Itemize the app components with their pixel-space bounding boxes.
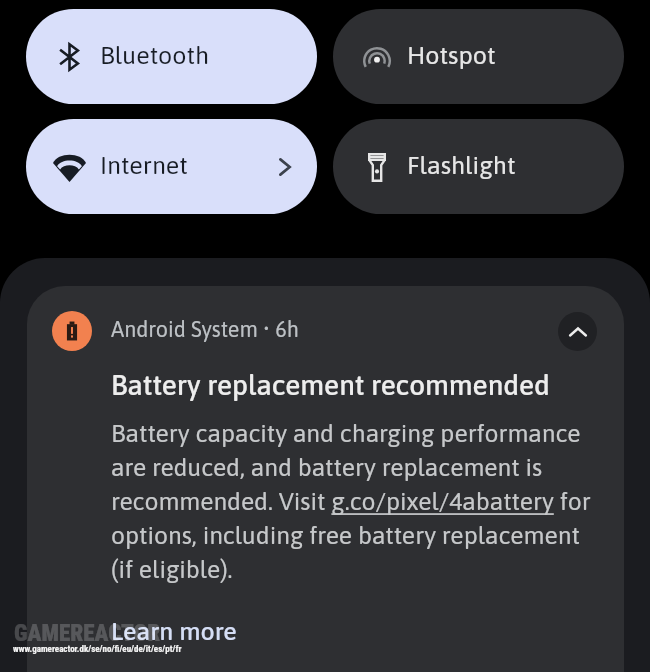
staticText: Internet [100,151,188,180]
button[interactable]: Android System • 6h [27,286,624,672]
staticText: Android System • 6h [111,317,299,342]
staticText: Bluetooth [100,41,210,70]
staticText: Battery replacement recommended [111,369,550,401]
staticText: GAMEREACTOR [14,620,161,647]
staticText: Flashlight [407,151,516,180]
staticText: Hotspot [407,41,496,70]
staticText: Learn more [111,617,237,646]
button[interactable]: Bluetooth [26,9,317,104]
button[interactable]: Learn more [111,617,237,646]
button[interactable]: Internet [26,119,317,214]
staticText: www.gamereactor.dk/se/no/fi/eu/de/it/es/… [13,644,182,655]
staticText: Battery capacity and charging performanc… [111,419,592,583]
button[interactable]: Flashlight [333,119,624,214]
button[interactable]: Collapse notification [558,312,597,351]
button[interactable]: Hotspot [333,9,624,104]
